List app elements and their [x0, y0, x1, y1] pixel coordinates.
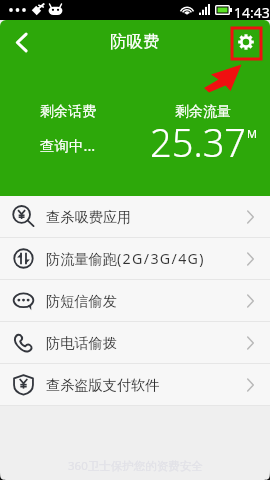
- staticText: 查询中...: [40, 135, 96, 155]
- staticText: 防短信偷发: [46, 292, 117, 310]
- button[interactable]: Settings: [231, 27, 261, 57]
- staticText: 剩余流量: [175, 103, 231, 121]
- staticText: 剩余话费: [40, 103, 96, 121]
- button[interactable]: 防短信偷发: [0, 280, 270, 321]
- staticText: 查杀盗版支付软件: [46, 376, 160, 394]
- button[interactable]: 防流量偷跑: [0, 238, 270, 279]
- staticText: 360卫士保护您的资费安全: [68, 458, 203, 474]
- staticText: 防电话偷拨: [46, 334, 117, 352]
- staticText: 防流量偷跑: [46, 250, 117, 268]
- staticText: (2G/3G/4G): [117, 249, 205, 268]
- button[interactable]: 查杀盗版支付软件: [0, 364, 270, 405]
- button[interactable]: 查杀吸费应用: [0, 196, 270, 237]
- button[interactable]: Back: [0, 20, 42, 64]
- staticText: 查杀吸费应用: [46, 208, 132, 226]
- staticText: 25.37: [150, 116, 247, 168]
- staticText: 防吸费: [110, 31, 160, 52]
- staticText: M: [247, 126, 257, 141]
- staticText: 14:43: [234, 3, 270, 22]
- button[interactable]: 防电话偷拨: [0, 322, 270, 363]
